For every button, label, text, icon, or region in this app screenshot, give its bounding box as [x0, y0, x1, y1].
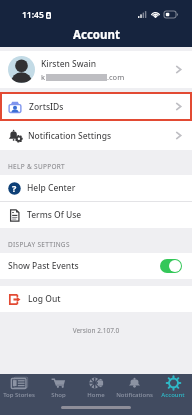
staticText: HELP & SUPPORT	[8, 162, 66, 171]
button[interactable]: Shop	[39, 377, 77, 399]
staticText: Show Past Events	[8, 260, 79, 272]
button[interactable]: Notification Settings	[0, 121, 192, 150]
button[interactable]: Top Stories	[0, 377, 38, 399]
button[interactable]: Kirsten Swain	[0, 51, 192, 88]
button[interactable]: ?	[0, 175, 192, 201]
staticText: Home	[87, 391, 105, 399]
staticText: ?	[12, 182, 17, 194]
staticText: Version 2.107.0	[0, 326, 192, 335]
button[interactable]: ZortsIDs	[0, 92, 192, 121]
staticText: .com	[107, 72, 125, 82]
staticText: ZortsIDs	[29, 101, 64, 113]
staticText: 11:45	[22, 9, 44, 21]
staticText: Account	[73, 27, 120, 43]
staticText: k	[41, 72, 46, 82]
button[interactable]: Terms Of Use	[0, 202, 192, 228]
staticText: Notification Settings	[28, 130, 112, 142]
button[interactable]: Show Past Events	[0, 253, 192, 279]
staticText: Account	[161, 391, 185, 399]
staticText: Shop	[51, 391, 66, 399]
button[interactable]: Log Out	[0, 286, 192, 312]
staticText: Log Out	[28, 293, 61, 305]
button[interactable]: Account	[154, 377, 192, 399]
staticText: Top Stories	[3, 391, 35, 399]
button[interactable]: Notifications	[115, 377, 153, 399]
button[interactable]: Home	[77, 377, 115, 399]
staticText: Notifications	[116, 391, 153, 399]
staticText: Terms Of Use	[27, 209, 82, 221]
staticText: DISPLAY SETTINGS	[8, 240, 70, 249]
staticText: Kirsten Swain	[41, 58, 97, 70]
staticText: Help Center	[27, 182, 76, 194]
